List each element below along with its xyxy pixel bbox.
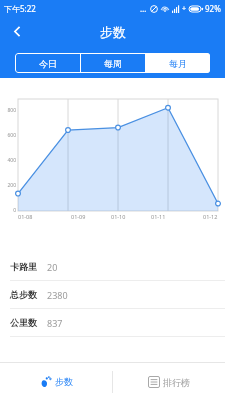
staticText: 400: [7, 157, 16, 164]
button[interactable]: Leaderboard: [113, 363, 225, 400]
staticText: 2380: [47, 289, 68, 301]
staticText: 837: [47, 317, 63, 329]
staticText: 总步数: [10, 289, 37, 300]
button[interactable]: 每月: [146, 53, 210, 73]
other: Leaderboard: [148, 376, 160, 388]
staticText: 20: [47, 261, 58, 273]
staticText: 排行榜: [163, 377, 190, 388]
staticText: 今日: [39, 58, 57, 69]
button[interactable]: Steps: [0, 363, 112, 400]
button[interactable]: 总步数: [0, 281, 225, 309]
staticText: 01-11: [151, 213, 166, 220]
staticText: 800: [7, 107, 16, 114]
staticText: 每周: [104, 58, 122, 69]
staticText: 01-10: [111, 213, 126, 220]
staticText: 步数: [100, 24, 126, 40]
staticText: 每月: [169, 58, 187, 69]
staticText: 卡路里: [10, 261, 37, 272]
staticText: 0: [13, 207, 16, 214]
staticText: 01-09: [71, 213, 86, 220]
staticText: 01-12: [203, 213, 218, 220]
staticText: 600: [7, 132, 16, 139]
staticText: …: [140, 3, 147, 14]
staticText: 公里数: [10, 317, 37, 328]
staticText: 步数: [55, 376, 73, 387]
staticText: 92%: [205, 3, 221, 14]
button[interactable]: Back: [0, 16, 34, 47]
staticText: +: [182, 4, 187, 14]
staticText: 01-08: [18, 213, 33, 220]
button[interactable]: 卡路里: [0, 253, 225, 281]
button[interactable]: 公里数: [0, 309, 225, 337]
button[interactable]: 每周: [81, 53, 145, 73]
button[interactable]: 今日: [15, 53, 80, 73]
staticText: 200: [7, 182, 16, 189]
other: Steps: [39, 375, 52, 388]
staticText: 下午5:22: [4, 3, 36, 14]
